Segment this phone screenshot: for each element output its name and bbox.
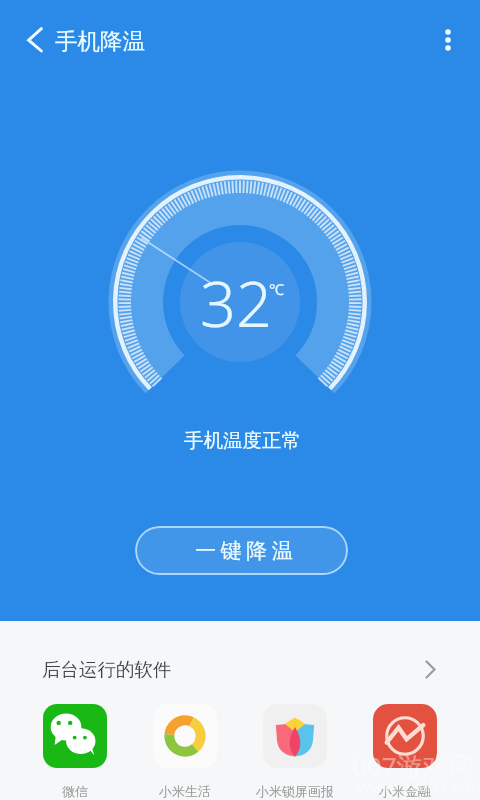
button[interactable]: More options [428, 20, 468, 60]
button[interactable]: 微信 [20, 704, 130, 799]
button[interactable]: 一键降温 [135, 526, 348, 575]
staticText: 32 [200, 260, 272, 346]
staticText: 007游戏网 [352, 748, 475, 784]
staticText: 后台运行的软件 [42, 658, 172, 681]
staticText: 小米锁屏画报 [256, 783, 334, 799]
staticText: 手机降温 [55, 27, 145, 55]
staticText: ℃ [269, 279, 284, 299]
staticText: www.yx007.com [357, 775, 480, 798]
staticText: 小米金融 [379, 783, 431, 799]
button[interactable]: 小米锁屏画报 [240, 704, 350, 799]
button[interactable]: 小米金融 [350, 704, 460, 799]
button[interactable]: 后台运行的软件 [0, 621, 480, 717]
button[interactable]: Back [15, 20, 55, 60]
staticText: 微信 [62, 783, 88, 799]
button[interactable]: 小米生活 [130, 704, 240, 799]
staticText: 小米生活 [159, 783, 211, 799]
staticText: 手机温度正常 [184, 428, 301, 453]
staticText: 一键降温 [193, 538, 295, 564]
